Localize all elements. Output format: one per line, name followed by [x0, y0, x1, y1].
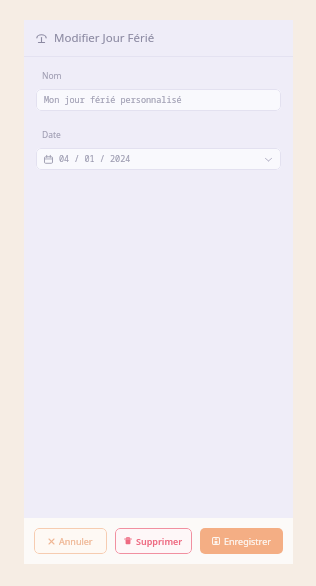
- button[interactable]: 04 / 01 / 2024: [36, 148, 281, 170]
- staticText: Nom: [42, 70, 62, 82]
- other: Holiday: [36, 33, 47, 44]
- staticText: Date: [42, 129, 61, 141]
- staticText: Annuler: [59, 535, 93, 547]
- button[interactable]: Enregistrer: [200, 528, 283, 554]
- staticText: Supprimer: [136, 535, 183, 547]
- staticText: Mon jour férié personnalisé: [44, 94, 182, 106]
- other: Open date picker: [264, 155, 273, 164]
- button[interactable]: Annuler: [34, 528, 107, 554]
- button[interactable]: Mon jour férié personnalisé: [36, 89, 281, 111]
- staticText: Enregistrer: [224, 535, 271, 547]
- staticText: Modifier Jour Férié: [54, 30, 155, 46]
- button[interactable]: Supprimer: [115, 528, 192, 554]
- button[interactable]: Holiday: [24, 20, 293, 56]
- staticText: 04 / 01 / 2024: [59, 153, 131, 165]
